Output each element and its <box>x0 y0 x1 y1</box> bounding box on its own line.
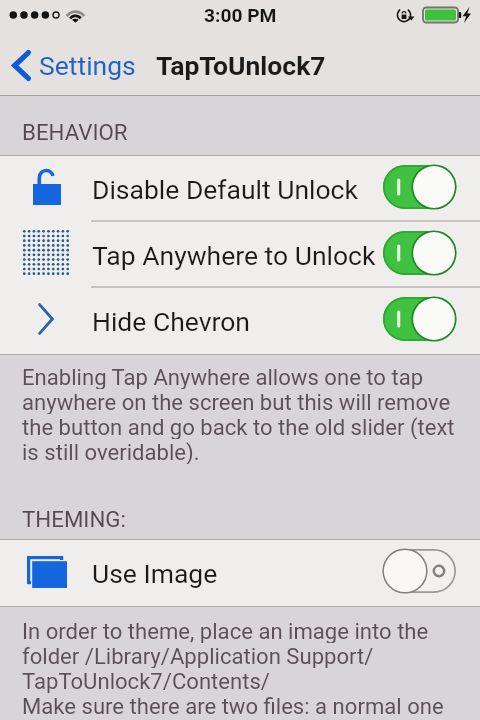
staticText: THEMING: <box>22 506 126 532</box>
button[interactable]: Switch on <box>383 165 456 209</box>
button[interactable]: Switch on <box>383 231 456 275</box>
button[interactable]: Switch off <box>383 549 456 593</box>
staticText: Disable Default Unlock <box>92 174 358 205</box>
other: Signal strength and Wi-Fi <box>0 0 90 35</box>
staticText: TapToUnlock7/Contents/ <box>22 668 270 693</box>
staticText: TapToUnlock7 <box>156 50 326 81</box>
staticText: Settings <box>39 50 136 81</box>
button[interactable]: Tap Anywhere to Unlock <box>0 222 480 288</box>
button[interactable]: Switch on <box>383 297 456 341</box>
staticText: Hide Chevron <box>92 306 250 337</box>
staticText: anywhere on the screen but this will rem… <box>22 389 451 414</box>
staticText: Enabling Tap Anywhere allows one to tap <box>22 364 424 389</box>
button[interactable]: Settings <box>0 44 146 87</box>
staticText: Tap Anywhere to Unlock <box>92 240 376 271</box>
staticText: folder /Library/Application Support/ <box>22 643 374 668</box>
other: Orientation lock and battery charging <box>394 0 480 35</box>
staticText: 3:00 PM <box>204 4 277 27</box>
staticText: is still overidable). <box>22 439 200 464</box>
staticText: BEHAVIOR <box>22 119 128 145</box>
staticText: Make sure there are two files: a normal … <box>22 693 444 718</box>
staticText: In order to theme, place an image into t… <box>22 618 429 643</box>
button[interactable]: Hide Chevron <box>0 288 480 354</box>
staticText: Use Image <box>92 558 218 589</box>
button[interactable]: Use Image <box>0 540 480 606</box>
button[interactable]: Disable Default Unlock <box>0 156 480 222</box>
staticText: the button and go back to the old slider… <box>22 414 455 439</box>
